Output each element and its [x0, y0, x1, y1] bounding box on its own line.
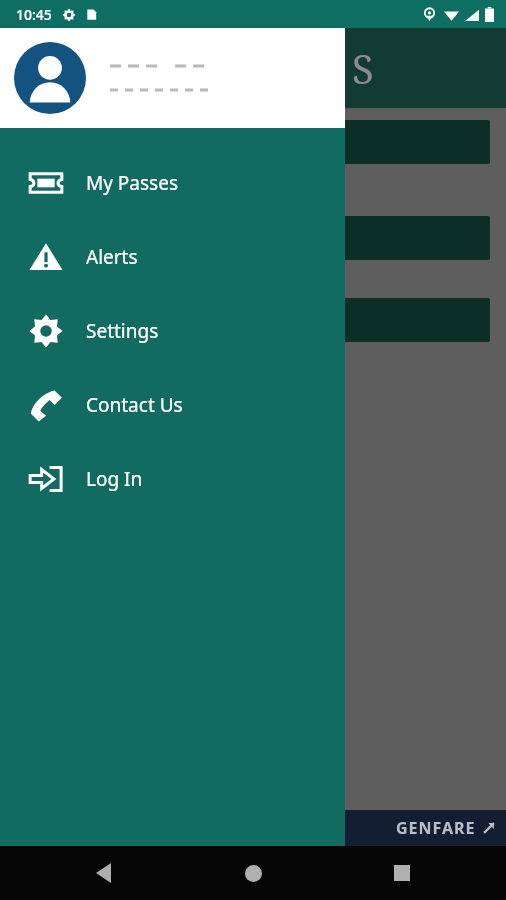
staticText: Contact Us	[86, 392, 183, 418]
button[interactable]: My Passes	[0, 146, 345, 220]
staticText: 1234 Main Road,	[16, 398, 134, 418]
staticText: https://example.com/jts	[16, 182, 185, 202]
other: Alerts	[28, 239, 64, 275]
other: Home	[245, 865, 262, 882]
button[interactable]	[16, 298, 490, 342]
staticText: Log In	[86, 466, 143, 492]
other: Settings	[28, 313, 64, 349]
staticText: Alerts	[86, 244, 138, 270]
other: Back	[96, 863, 116, 883]
button[interactable]	[0, 28, 345, 128]
button[interactable]: Contact Us	[0, 368, 345, 442]
other: Log In	[28, 461, 64, 497]
staticText: S	[352, 41, 374, 95]
staticText: Settings	[86, 318, 159, 344]
staticText: My Passes	[86, 170, 179, 196]
staticText: 10:45	[16, 5, 52, 24]
other: Contact Us	[28, 387, 64, 423]
other: My Passes	[28, 165, 64, 201]
button[interactable]	[16, 120, 490, 164]
button[interactable]: Settings	[0, 294, 345, 368]
staticText: GENFARE	[396, 817, 476, 839]
button[interactable]: Alerts	[0, 220, 345, 294]
button[interactable]: Log In	[0, 442, 345, 516]
button[interactable]	[16, 216, 490, 260]
